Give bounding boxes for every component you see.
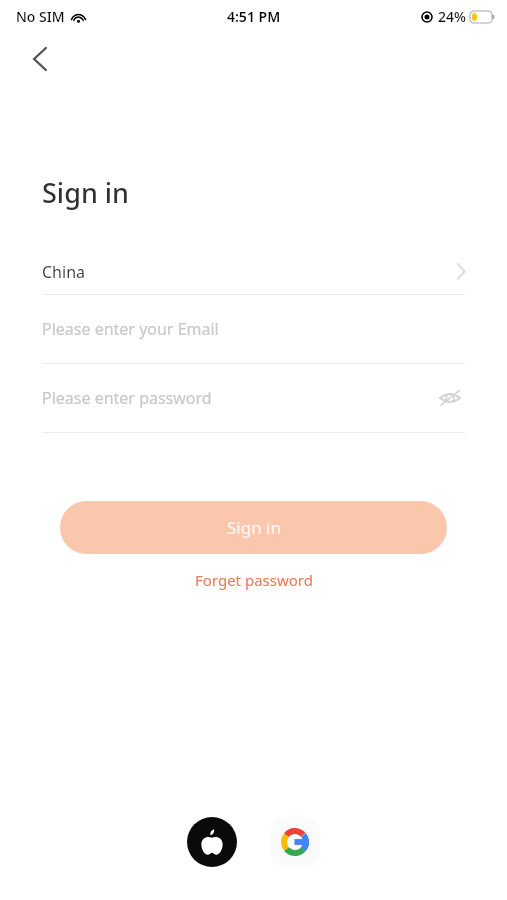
button[interactable]: Sign in with Apple — [187, 817, 237, 867]
staticText: 24% — [438, 7, 466, 26]
staticText: Forget password — [195, 570, 313, 590]
button[interactable]: Please enter password — [0, 364, 507, 433]
button[interactable]: China — [0, 249, 507, 295]
button[interactable]: Back — [18, 37, 62, 81]
button[interactable]: Please enter your Email — [0, 295, 507, 364]
staticText: Please enter your Email — [42, 318, 219, 340]
staticText: Sign in — [227, 516, 281, 539]
staticText: No SIM — [16, 7, 65, 26]
button[interactable]: Sign in — [60, 501, 447, 554]
staticText: 4:51 PM — [227, 7, 281, 26]
button[interactable]: Forget password — [0, 570, 507, 590]
staticText: China — [42, 261, 85, 283]
staticText: Sign in — [42, 174, 130, 211]
button[interactable]: Sign in with Google — [270, 817, 320, 867]
button[interactable]: Show password — [435, 383, 465, 413]
staticText: Please enter password — [42, 387, 212, 409]
